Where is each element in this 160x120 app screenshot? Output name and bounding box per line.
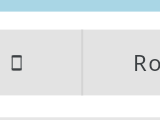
button[interactable]: Room bbox=[83, 30, 160, 96]
button[interactable]: App bar bbox=[0, 0, 160, 12]
button[interactable]: Device bbox=[0, 30, 81, 96]
staticText: Room bbox=[133, 47, 160, 77]
